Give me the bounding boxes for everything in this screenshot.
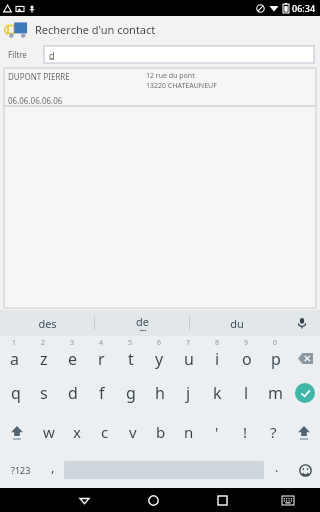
button[interactable]: s [30,374,58,412]
button[interactable]: Recents [202,488,243,512]
button[interactable]: de [95,310,189,336]
staticText: z [40,348,48,370]
button[interactable]: Shift [0,412,34,452]
button[interactable]: des [0,310,94,336]
button[interactable]: h [145,374,174,412]
staticText: w [43,422,55,442]
button[interactable]: 5 [116,336,145,374]
button[interactable]: 2 [29,336,58,374]
staticText: g [126,382,136,404]
staticText: r [98,348,105,370]
staticText: j [186,382,191,404]
button[interactable]: , [42,452,64,488]
staticText: f [99,382,105,404]
staticText: des [38,316,57,331]
staticText: n [184,422,194,442]
button[interactable]: f [87,374,116,412]
staticText: s [40,382,48,404]
button[interactable]: Emoji [290,452,320,488]
button[interactable]: ? [259,412,287,452]
staticText: c [101,422,109,442]
button[interactable]: n [175,412,203,452]
staticText: e [68,348,78,370]
button[interactable]: x [63,412,91,452]
staticText: Recherche d'un contact [35,22,156,37]
staticText: h [155,382,165,404]
button[interactable]: w [34,412,63,452]
staticText: 5 [128,338,133,348]
staticText: 0 [273,338,278,348]
button[interactable]: 7 [174,336,203,374]
staticText: p [271,348,281,370]
staticText: x [73,422,81,442]
button[interactable]: Enter [290,374,320,412]
staticText: m [268,382,283,404]
button[interactable]: Home [133,488,174,512]
staticText: ? [270,422,277,442]
button[interactable]: b [147,412,175,452]
button[interactable]: Back [64,488,105,512]
staticText: du [230,316,244,331]
button[interactable]: ! [231,412,259,452]
staticText: a [10,348,19,370]
staticText: 06:34 [292,2,316,14]
button[interactable]: c [91,412,119,452]
staticText: Filtre [8,49,27,60]
staticText: o [242,348,252,370]
button[interactable]: Switch keyboard [267,488,308,512]
staticText: 8 [215,338,220,348]
button[interactable]: Up [0,16,320,42]
button[interactable]: ' [203,412,231,452]
staticText: de [136,314,149,329]
staticText: q [11,382,21,404]
staticText: t [128,348,134,370]
staticText: 3 [70,338,75,348]
button[interactable]: v [119,412,147,452]
staticText: , [51,458,55,476]
button[interactable]: 6 [145,336,174,374]
staticText: . [275,458,279,476]
button[interactable]: 8 [203,336,232,374]
staticText: 12 rue du pont [146,71,195,81]
button[interactable]: 3 [58,336,87,374]
button[interactable]: du [190,310,284,336]
staticText: ?123 [11,464,31,476]
staticText: i [215,348,220,370]
button[interactable]: d [44,46,314,63]
button[interactable]: m [261,374,290,412]
button[interactable]: q [2,374,30,412]
button[interactable]: . [264,452,290,488]
button[interactable]: Voice input [284,310,320,336]
staticText: 1 [12,338,17,348]
staticText: 7 [186,338,191,348]
staticText: DUPONT PIERRE [8,71,70,82]
button[interactable]: 1 [0,336,29,374]
staticText: d [49,49,55,61]
button[interactable]: j [174,374,203,412]
staticText: 4 [99,338,104,348]
staticText: l [244,382,249,404]
button[interactable]: Shift [287,412,320,452]
button[interactable]: 9 [232,336,261,374]
button[interactable]: 0 [261,336,290,374]
staticText: ! [243,422,248,442]
staticText: d [68,382,78,404]
staticText: b [156,422,166,442]
other: Up [3,18,31,40]
staticText: k [213,382,222,404]
staticText: 6 [157,338,162,348]
button[interactable]: d [58,374,87,412]
button[interactable]: ?123 [0,452,42,488]
button[interactable]: l [232,374,261,412]
staticText: 13220 CHATEAUNEUF [146,81,217,91]
staticText: v [129,422,137,442]
button[interactable]: g [116,374,145,412]
button[interactable]: Backspace [290,336,320,374]
staticText: 2 [41,338,46,348]
button[interactable]: DUPONT PIERRE [4,68,316,106]
button[interactable]: k [203,374,232,412]
staticText: 9 [244,338,249,348]
button[interactable]: 4 [87,336,116,374]
staticText: y [155,348,164,370]
